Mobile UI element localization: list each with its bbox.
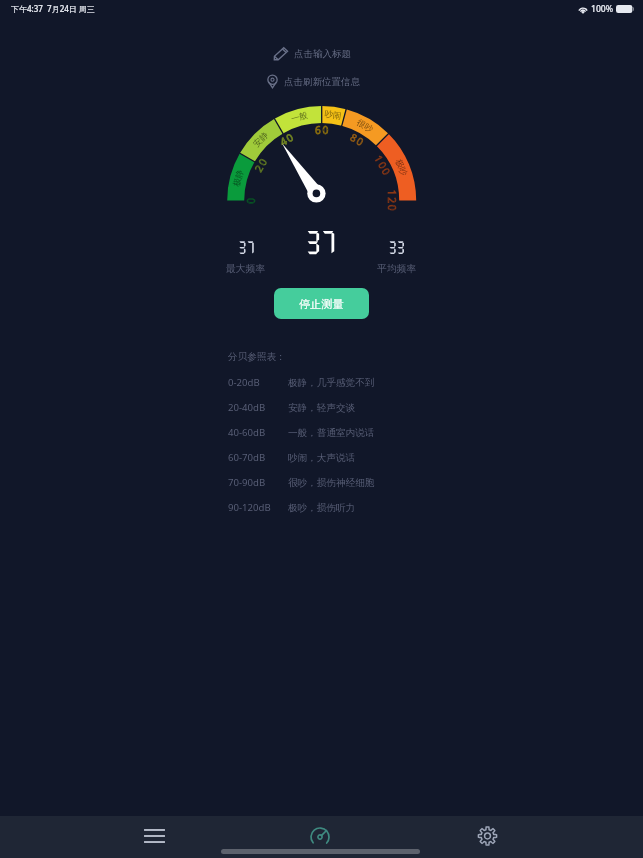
button[interactable]: Settings — [467, 816, 507, 856]
staticText: 很吵，损伤神经细胞 — [288, 477, 375, 489]
staticText: 点击刷新位置信息 — [284, 76, 360, 88]
staticText: 20-40dB — [228, 401, 266, 414]
button[interactable]: Menu — [134, 816, 174, 856]
button[interactable]: 停止测量 — [274, 288, 369, 319]
staticText: 平均频率 — [377, 263, 417, 275]
staticText: 点击输入标题 — [294, 48, 351, 60]
staticText: 70-90dB — [228, 476, 266, 489]
button[interactable]: 点击输入标题 — [274, 47, 351, 60]
staticText: 极静，几乎感觉不到 — [288, 377, 375, 389]
staticText: 下午4:37 7月24日 周三 — [11, 3, 95, 14]
staticText: 0-20dB — [228, 376, 260, 389]
staticText: 停止测量 — [299, 297, 344, 311]
staticText: 分贝参照表： — [228, 351, 286, 363]
staticText: 40-60dB — [228, 426, 266, 439]
staticText: 90-120dB — [228, 501, 271, 514]
staticText: 60-70dB — [228, 451, 266, 464]
staticText: 极吵，损伤听力 — [288, 502, 356, 514]
staticText: 吵闹，大声说话 — [288, 452, 356, 464]
button[interactable]: Sound meter — [300, 816, 340, 856]
staticText: 安静，轻声交谈 — [288, 402, 356, 414]
button[interactable]: 点击刷新位置信息 — [267, 75, 360, 88]
staticText: 100% — [591, 3, 614, 15]
staticText: 一般，普通室内说话 — [288, 427, 375, 439]
staticText: 最大频率 — [226, 263, 266, 275]
